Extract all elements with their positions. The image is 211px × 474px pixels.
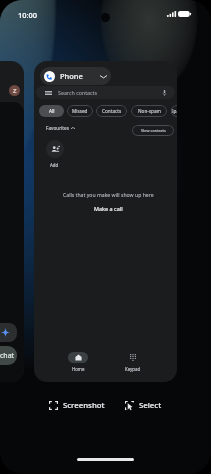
staticText: Spam xyxy=(171,108,177,114)
staticText: Screenshot xyxy=(63,400,105,411)
staticText: Add xyxy=(50,162,59,168)
staticText: Home xyxy=(72,366,85,372)
button[interactable]: Phone xyxy=(40,67,111,85)
button[interactable]: All xyxy=(39,105,64,117)
staticText: Search contacts xyxy=(58,89,98,96)
button[interactable]: Recent app xyxy=(0,61,24,382)
button[interactable]: Keypad xyxy=(123,352,143,372)
staticText: chat xyxy=(0,351,15,361)
staticText: 10:00 xyxy=(18,10,37,20)
staticText: Contacts xyxy=(102,108,122,114)
button[interactable]: Add xyxy=(41,140,68,168)
staticText: Keypad xyxy=(125,366,141,372)
staticText: All xyxy=(49,108,55,114)
button[interactable]: Non-spam xyxy=(131,105,167,117)
button[interactable]: Screenshot xyxy=(46,397,108,414)
staticText: Favourites xyxy=(46,125,69,131)
staticText: Make a call xyxy=(94,205,123,212)
staticText: Missed xyxy=(72,108,88,114)
button[interactable]: Make a call xyxy=(91,204,126,213)
staticText: Z xyxy=(13,87,17,95)
staticText: View contacts xyxy=(141,128,166,133)
staticText: Select xyxy=(139,400,162,411)
button[interactable]: Contacts xyxy=(96,105,127,117)
staticText: Phone xyxy=(60,71,83,81)
button[interactable]: Favourites xyxy=(46,125,75,131)
button[interactable]: Missed xyxy=(67,105,93,117)
button[interactable]: Select xyxy=(122,397,165,414)
button[interactable]: Spam xyxy=(171,105,177,117)
staticText: Calls that you make will show up here xyxy=(63,191,154,198)
button[interactable]: Home xyxy=(68,352,88,372)
button[interactable]: View contacts xyxy=(132,125,174,136)
staticText: Non-spam xyxy=(138,108,161,114)
button[interactable]: Search contacts xyxy=(36,86,175,99)
